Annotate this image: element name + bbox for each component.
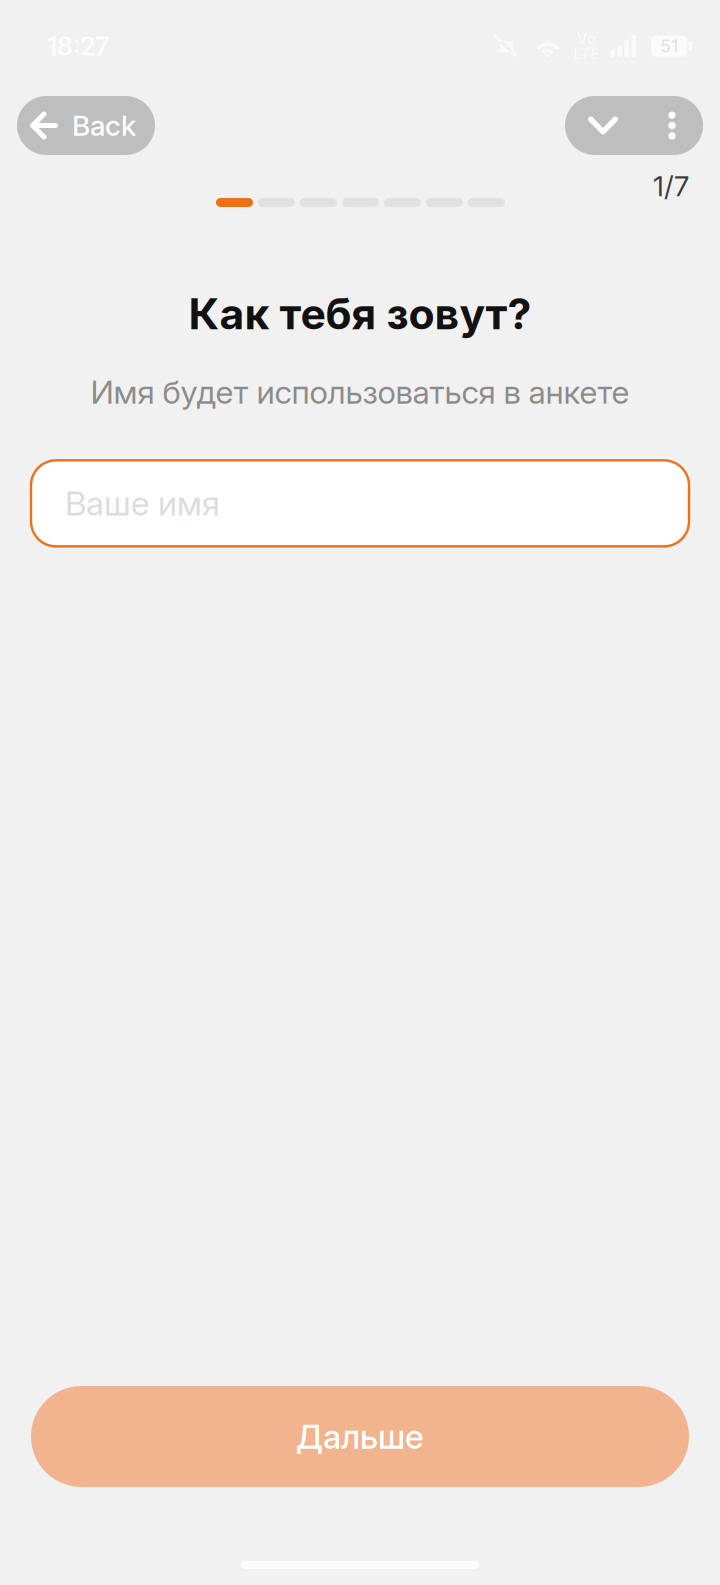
button[interactable]: Ваше имя xyxy=(31,460,689,546)
staticText: Как тебя зовут? xyxy=(188,288,531,340)
staticText: 18:27 xyxy=(47,31,109,62)
staticText: Vo xyxy=(577,29,596,47)
button[interactable]: Back xyxy=(17,96,155,155)
staticText: Ваше имя xyxy=(65,483,220,523)
button[interactable]: More options xyxy=(641,96,703,155)
staticText: 1/7 xyxy=(653,169,689,203)
staticText: Дальше xyxy=(296,1416,424,1457)
staticText: 51 xyxy=(660,36,678,57)
staticText: Имя будет использоваться в анкете xyxy=(90,373,629,411)
button[interactable]: Collapse xyxy=(565,96,641,155)
button[interactable]: Дальше xyxy=(31,1386,689,1487)
staticText: Back xyxy=(72,109,136,142)
staticText: LTE xyxy=(573,45,599,63)
